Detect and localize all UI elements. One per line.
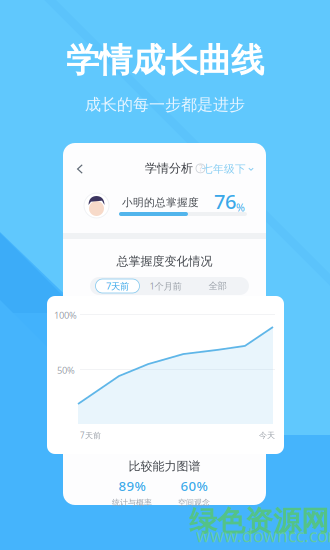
staticText: 今天 bbox=[259, 430, 275, 440]
staticText: 成长的每一步都是进步 bbox=[85, 95, 245, 115]
staticText: 总掌握度变化情况 bbox=[116, 254, 212, 269]
staticText: 统计与概率 bbox=[112, 498, 152, 507]
staticText: 76 bbox=[214, 188, 236, 215]
staticText: 绿色资源网 bbox=[189, 504, 329, 538]
staticText: 学情分析 bbox=[145, 161, 193, 176]
staticText: 7天前 bbox=[80, 430, 101, 441]
button[interactable]: Help bbox=[196, 164, 205, 173]
staticText: 50% bbox=[57, 364, 75, 376]
staticText: 89% bbox=[118, 477, 145, 495]
button[interactable]: 全部 bbox=[191, 279, 243, 293]
staticText: % bbox=[236, 200, 245, 215]
staticText: 100% bbox=[54, 309, 77, 321]
staticText: 学情成长曲线 bbox=[66, 40, 264, 81]
staticText: 全部 bbox=[208, 280, 226, 292]
button[interactable]: 七年级下 bbox=[199, 161, 254, 177]
staticText: 7天前 bbox=[106, 280, 129, 292]
button[interactable]: 7天前 bbox=[95, 279, 139, 293]
button[interactable]: Back bbox=[70, 159, 90, 179]
staticText: www.downcc.com bbox=[196, 524, 330, 547]
button[interactable]: 1个月前 bbox=[139, 279, 191, 293]
staticText: 空间观念 bbox=[178, 498, 210, 507]
staticText: 1个月前 bbox=[149, 280, 181, 292]
staticText: ? bbox=[199, 163, 202, 174]
staticText: 七年级下 bbox=[202, 162, 246, 175]
staticText: 小明的总掌握度 bbox=[122, 196, 199, 209]
staticText: 比较能力图谱 bbox=[128, 459, 200, 474]
staticText: 60% bbox=[180, 477, 207, 495]
